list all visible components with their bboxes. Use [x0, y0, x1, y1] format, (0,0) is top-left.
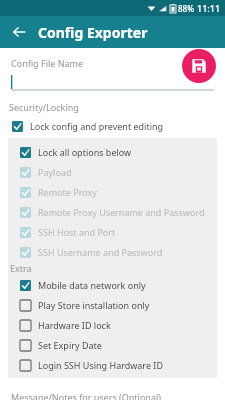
- staticText: Config Exporter: [38, 23, 148, 42]
- staticText: SSH Username and Password: [38, 246, 163, 258]
- button[interactable]: Remote Proxy Username and Password: [8, 202, 217, 222]
- button[interactable]: SSH Username and Password: [8, 242, 217, 262]
- staticText: Security/Locking: [9, 101, 79, 113]
- staticText: Mobile data network only: [38, 279, 146, 291]
- button[interactable]: Lock config and prevent editing: [0, 116, 225, 136]
- button[interactable]: Lock all options below: [8, 142, 217, 162]
- button[interactable]: Payload: [8, 162, 217, 182]
- staticText: 11:11: [197, 2, 221, 14]
- staticText: Play Store installation only: [38, 299, 150, 311]
- staticText: Message/Notes for users (Optional): [11, 391, 161, 400]
- button[interactable]: Play Store installation only: [8, 295, 217, 315]
- button[interactable]: Hardware ID lock: [8, 315, 217, 335]
- staticText: Lock config and prevent editing: [30, 120, 164, 132]
- staticText: Remote Proxy: [38, 186, 97, 198]
- staticText: Set Expiry Date: [38, 339, 102, 351]
- staticText: Payload: [38, 166, 72, 178]
- button[interactable]: Mobile data network only: [8, 275, 217, 295]
- staticText: Lock all options below: [38, 146, 132, 158]
- staticText: Login SSH Using Hardware ID: [38, 359, 163, 371]
- button[interactable]: SSH Host and Port: [8, 222, 217, 242]
- staticText: Config File Name: [11, 57, 84, 69]
- staticText: Remote Proxy Username and Password: [38, 206, 205, 218]
- staticText: 88%: [178, 3, 194, 14]
- button[interactable]: Remote Proxy: [8, 182, 217, 202]
- staticText: SSH Host and Port: [38, 226, 116, 238]
- staticText: Hardware ID lock: [38, 319, 111, 331]
- staticText: Extra: [10, 262, 32, 274]
- button[interactable]: Back: [6, 19, 32, 45]
- button[interactable]: Save config: [182, 49, 216, 83]
- button[interactable]: Set Expiry Date: [8, 335, 217, 355]
- button[interactable]: [11, 75, 214, 91]
- button[interactable]: Login SSH Using Hardware ID: [8, 355, 217, 375]
